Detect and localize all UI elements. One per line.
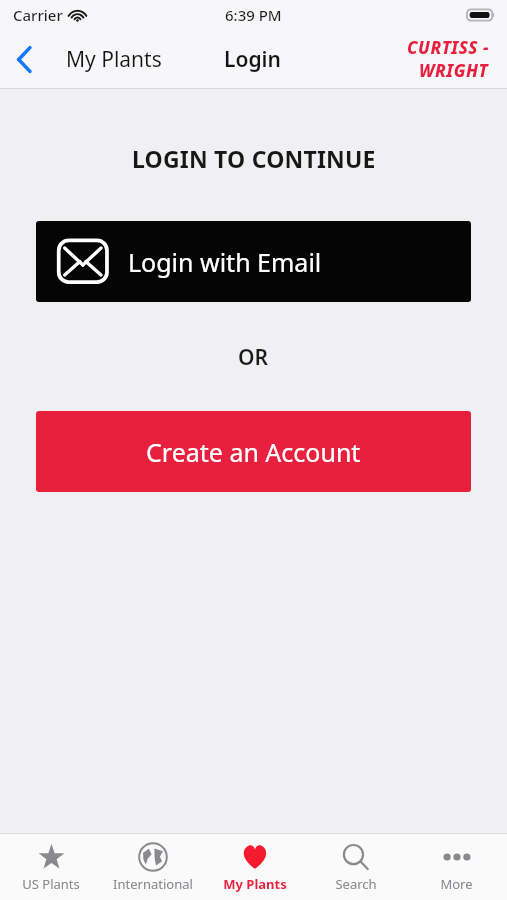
- staticText: Carrier: [13, 5, 63, 25]
- button[interactable]: My Plants: [204, 834, 305, 900]
- staticText: International: [113, 875, 193, 893]
- button[interactable]: More: [406, 834, 507, 900]
- staticText: LOGIN TO CONTINUE: [132, 143, 376, 174]
- button[interactable]: Search: [305, 834, 406, 900]
- staticText: CURTISS -: [407, 36, 489, 59]
- staticText: More: [440, 875, 473, 893]
- staticText: Search: [335, 875, 377, 893]
- button[interactable]: Login with Email: [36, 221, 471, 302]
- button[interactable]: International: [102, 834, 204, 900]
- staticText: OR: [238, 343, 269, 372]
- staticText: My Plants: [223, 875, 287, 893]
- staticText: US Plants: [22, 875, 80, 893]
- staticText: Create an Account: [146, 435, 361, 469]
- staticText: Login with Email: [128, 245, 322, 279]
- button[interactable]: Create an Account: [36, 411, 471, 492]
- staticText: 6:39 PM: [225, 5, 282, 25]
- staticText: Login: [224, 45, 281, 74]
- button[interactable]: Back: [0, 33, 48, 85]
- button[interactable]: CURTISS -: [407, 36, 489, 82]
- button[interactable]: US Plants: [0, 834, 102, 900]
- staticText: My Plants: [66, 45, 162, 74]
- staticText: WRIGHT: [419, 59, 489, 82]
